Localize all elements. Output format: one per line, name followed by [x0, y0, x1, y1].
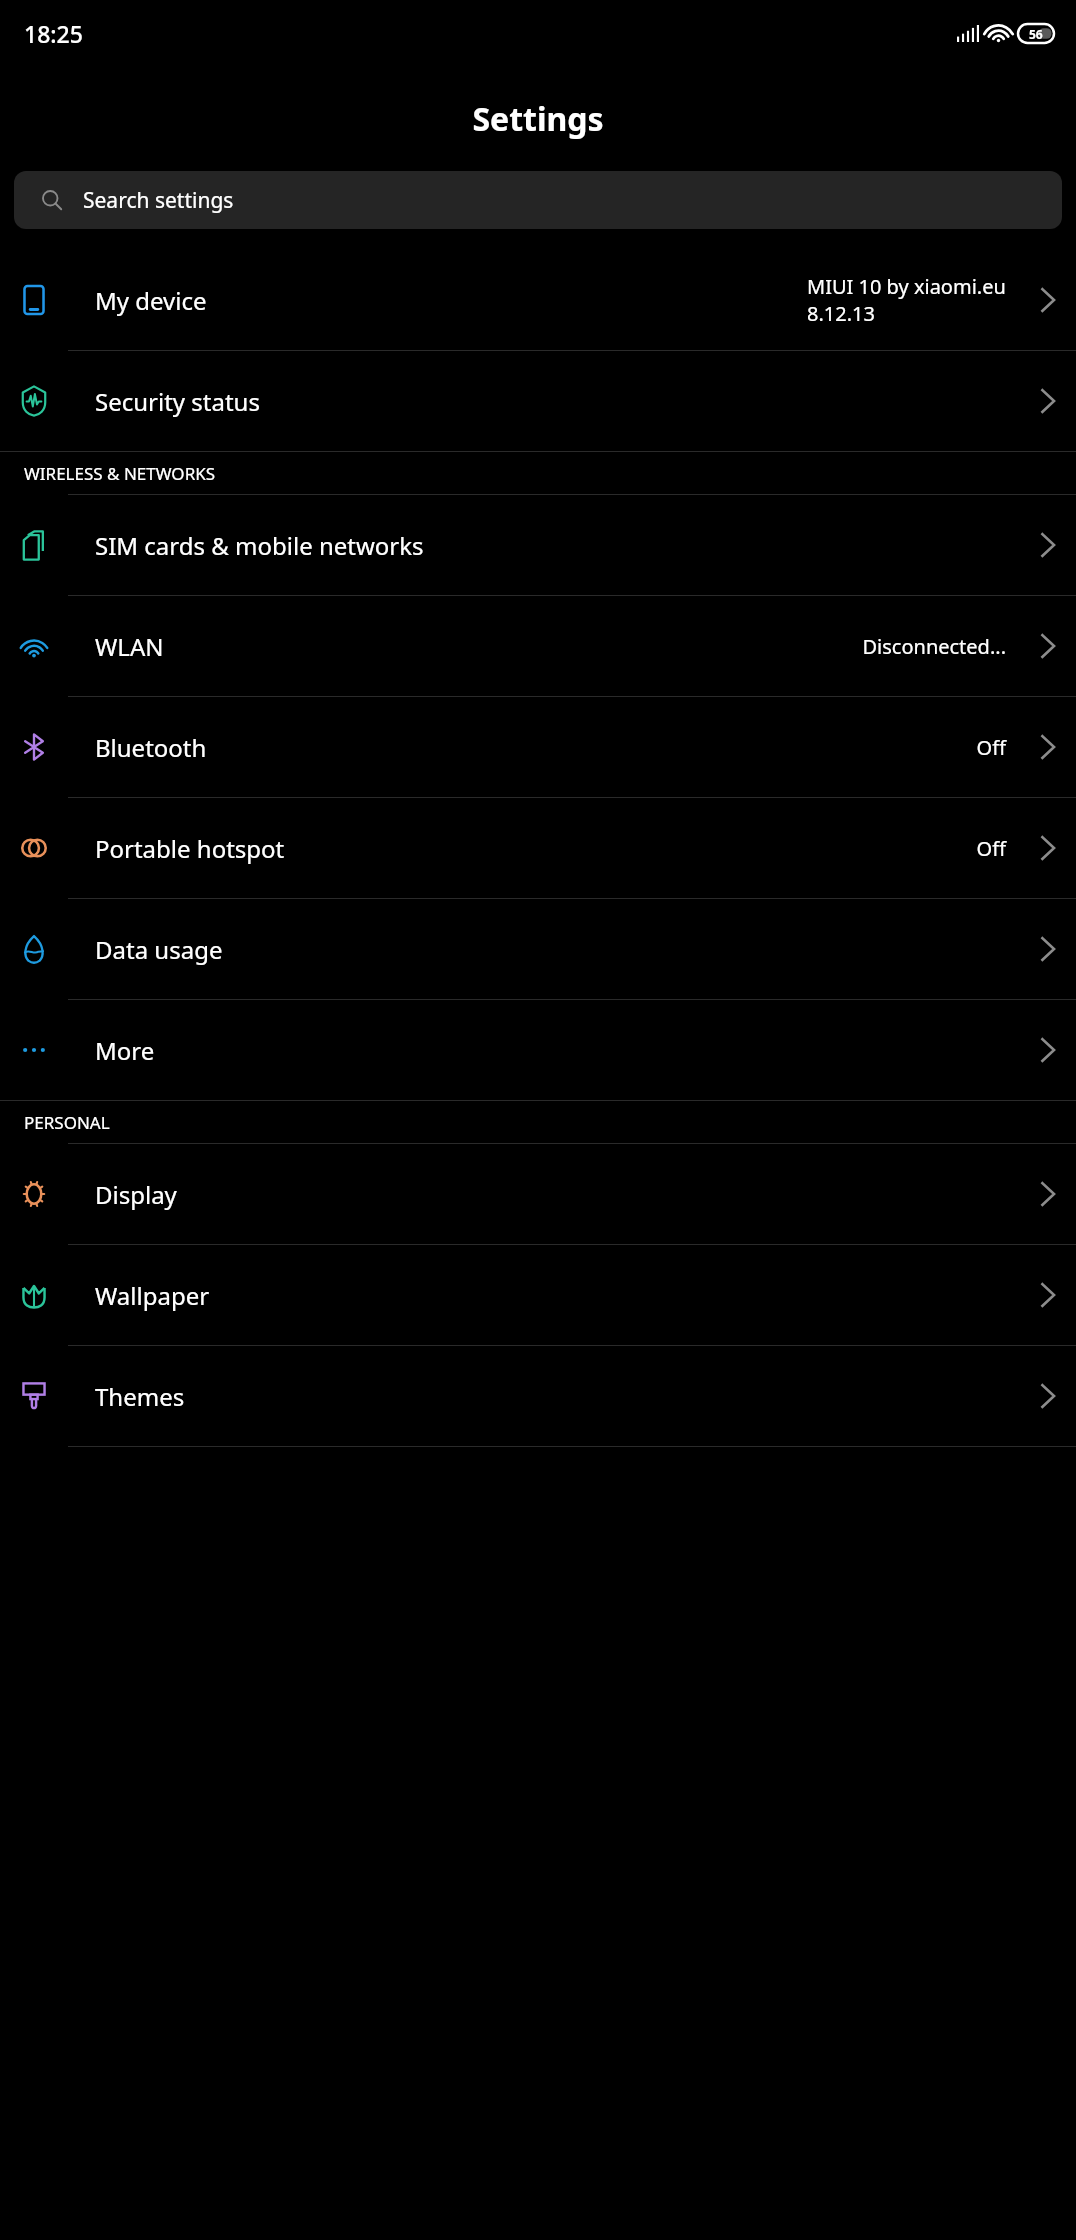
staticText: SIM cards & mobile networks	[95, 529, 1012, 562]
staticText: Themes	[95, 1380, 1012, 1413]
staticText: Portable hotspot	[95, 832, 968, 865]
staticText: WLAN	[95, 630, 854, 663]
button[interactable]: Data usage	[0, 899, 1076, 999]
button[interactable]: My device	[0, 250, 1076, 350]
other: More	[17, 1033, 51, 1067]
staticText: WIRELESS & NETWORKS	[24, 462, 216, 485]
button[interactable]: Search settings	[14, 171, 1062, 229]
staticText: Settings	[472, 97, 604, 141]
button[interactable]: Portable hotspot	[0, 798, 1076, 898]
staticText: My device	[95, 284, 799, 317]
button[interactable]: SIM cards	[0, 495, 1076, 595]
button[interactable]: Security status	[0, 351, 1076, 451]
staticText: Wallpaper	[95, 1279, 1012, 1312]
button[interactable]: Bluetooth	[0, 697, 1076, 797]
other: Data usage	[17, 932, 51, 966]
staticText: Data usage	[95, 933, 1012, 966]
other: Portable hotspot	[17, 831, 51, 865]
staticText: More	[95, 1034, 1012, 1067]
staticText: Disconnected...	[862, 633, 1006, 660]
other: Display	[17, 1177, 51, 1211]
other: Wallpaper	[17, 1278, 51, 1312]
button[interactable]: WLAN	[0, 596, 1076, 696]
button[interactable]: Wallpaper	[0, 1245, 1076, 1345]
button[interactable]: Display	[0, 1144, 1076, 1244]
staticText: 18:25	[24, 18, 83, 49]
button[interactable]: Themes	[0, 1346, 1076, 1446]
other: WLAN	[17, 629, 51, 663]
other: My device	[17, 283, 51, 317]
staticText: Off	[976, 734, 1006, 761]
other: SIM cards	[17, 528, 51, 562]
other: Security status	[17, 384, 51, 418]
staticText: Search settings	[83, 186, 234, 215]
staticText: Bluetooth	[95, 731, 968, 764]
other: Themes	[17, 1379, 51, 1413]
button[interactable]: More	[0, 1000, 1076, 1100]
staticText: Security status	[95, 385, 1012, 418]
other: Bluetooth	[17, 730, 51, 764]
staticText: PERSONAL	[24, 1111, 110, 1134]
staticText: MIUI 10 by xiaomi.eu 8.12.13	[807, 273, 1006, 327]
staticText: Display	[95, 1178, 1012, 1211]
staticText: 56	[1029, 26, 1043, 42]
staticText: Off	[976, 835, 1006, 862]
